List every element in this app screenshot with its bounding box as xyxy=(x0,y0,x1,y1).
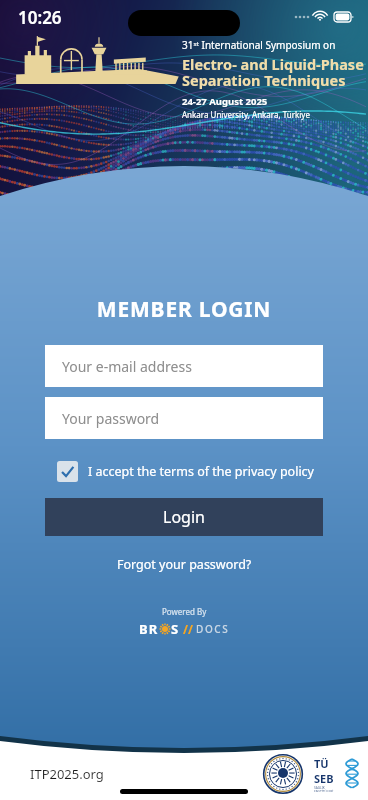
staticText: Login xyxy=(163,506,205,528)
staticText: MEMBER LOGIN xyxy=(45,295,323,324)
staticText: Electro- and Liquid-Phase Separation Tec… xyxy=(182,54,364,91)
button[interactable]: Your password xyxy=(45,397,323,439)
button[interactable]: Login xyxy=(45,498,323,536)
staticText: S xyxy=(171,620,180,638)
button[interactable]: Forgot your password? xyxy=(45,556,323,573)
other: Ankara University xyxy=(262,753,304,795)
button[interactable]: Your e-mail address xyxy=(45,345,323,387)
staticText: TÜ xyxy=(314,756,329,771)
button[interactable]: I accept the terms of the privacy policy xyxy=(57,461,314,482)
staticText: Ankara University, Ankara, Türkiye xyxy=(182,109,310,120)
staticText: SAĞLIK ENSTİTÜLERİ xyxy=(314,786,334,792)
staticText: SEB xyxy=(314,771,334,786)
staticText: Powered By xyxy=(162,606,207,617)
staticText: 31ˢᵗ International Symposium on xyxy=(182,38,336,52)
other: TUSEB xyxy=(314,756,354,792)
staticText: 10:26 xyxy=(18,6,62,29)
button[interactable]: ITP2025.org xyxy=(30,765,104,783)
staticText: Your e-mail address xyxy=(62,357,192,376)
staticText: DOCS xyxy=(196,622,230,636)
staticText: I accept the terms of the privacy policy xyxy=(88,463,314,480)
staticText: 24-27 August 2025 xyxy=(182,95,268,108)
staticText: Forgot your password? xyxy=(117,556,252,573)
staticText: Your password xyxy=(62,409,160,428)
staticText: BR xyxy=(139,620,159,638)
staticText: // xyxy=(183,621,193,637)
